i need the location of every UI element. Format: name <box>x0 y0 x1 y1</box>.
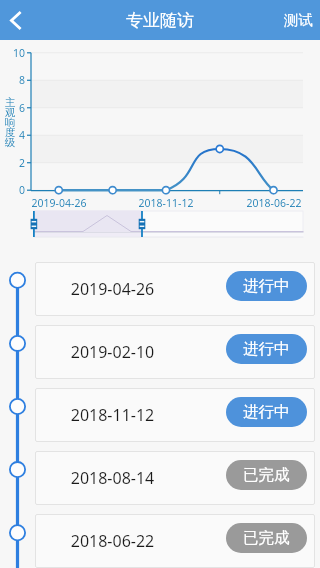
button[interactable]: 2018-11-12 <box>35 388 315 442</box>
staticText: 2018-11-12 <box>35 404 190 426</box>
staticText: 度 <box>4 126 16 139</box>
staticText: 2018-06-22 <box>35 530 190 552</box>
staticText: 0 <box>6 183 25 197</box>
staticText: 2 <box>6 156 25 170</box>
staticText: 10 <box>6 46 25 60</box>
staticText: 2018-11-12 <box>134 196 198 210</box>
staticText: 2018-08-14 <box>35 467 190 489</box>
button[interactable]: 2019-02-10 <box>35 325 315 379</box>
button[interactable]: 测试 <box>272 0 320 40</box>
staticText: 主 <box>4 96 16 109</box>
staticText: 4 <box>6 128 25 142</box>
button[interactable]: 2018-06-22 <box>35 514 315 568</box>
staticText: 进行中 <box>243 402 290 422</box>
staticText: 2019-04-26 <box>35 278 190 300</box>
staticText: 6 <box>6 101 25 115</box>
button[interactable]: 已完成 <box>226 460 307 490</box>
button[interactable]: 已完成 <box>226 523 307 553</box>
staticText: 8 <box>6 73 25 87</box>
staticText: 观 <box>4 106 16 119</box>
staticText: 2019-04-26 <box>27 196 91 210</box>
button[interactable]: 2019-04-26 <box>35 262 315 316</box>
staticText: 已完成 <box>243 528 290 548</box>
staticText: 专业随访 <box>126 10 194 31</box>
button[interactable]: 进行中 <box>226 334 307 364</box>
staticText: 测试 <box>284 11 313 29</box>
staticText: 进行中 <box>243 276 290 296</box>
staticText: 2019-02-10 <box>35 341 190 363</box>
button[interactable]: Back <box>0 1 38 39</box>
staticText: 2018-06-22 <box>242 196 306 210</box>
button[interactable]: 2018-08-14 <box>35 451 315 505</box>
button[interactable]: 进行中 <box>226 397 307 427</box>
staticText: 进行中 <box>243 339 290 359</box>
button[interactable]: 进行中 <box>226 271 307 301</box>
staticText: 响 <box>4 116 16 129</box>
staticText: 级 <box>4 136 16 149</box>
staticText: 已完成 <box>243 465 290 485</box>
